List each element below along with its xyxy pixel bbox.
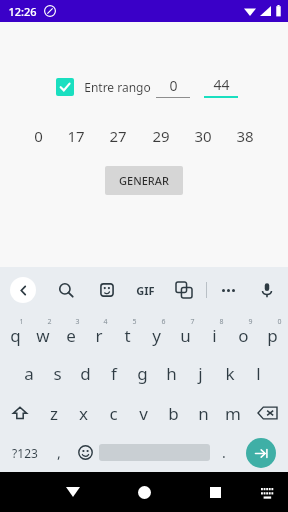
button[interactable]: Translate xyxy=(173,279,195,301)
button[interactable]: Backspace xyxy=(248,393,287,433)
staticText: x xyxy=(79,402,88,425)
button[interactable]: a xyxy=(15,353,43,393)
staticText: f xyxy=(111,362,117,385)
staticText: 1 xyxy=(19,317,24,327)
staticText: u xyxy=(180,324,191,347)
staticText: e xyxy=(66,324,76,347)
button[interactable]: 3 xyxy=(57,313,85,353)
staticText: 3 xyxy=(75,317,80,327)
staticText: a xyxy=(24,362,34,385)
button[interactable]: 0 xyxy=(156,76,190,98)
staticText: 12:26 xyxy=(8,4,37,19)
staticText: b xyxy=(168,402,179,425)
staticText: o xyxy=(238,324,249,347)
button[interactable]: v xyxy=(128,393,158,433)
staticText: 2 xyxy=(47,317,52,327)
button[interactable]: 2 xyxy=(29,313,57,353)
staticText: 9 xyxy=(248,317,253,327)
staticText: 8 xyxy=(219,317,224,327)
staticText: 44 xyxy=(213,75,230,94)
button[interactable]: 9 xyxy=(229,313,258,353)
staticText: GENERAR xyxy=(119,173,169,188)
staticText: 0 xyxy=(169,76,178,95)
button[interactable]: Emoji xyxy=(71,433,99,472)
staticText: 5 xyxy=(132,317,137,327)
button[interactable]: k xyxy=(215,353,244,393)
button[interactable]: 8 xyxy=(200,313,229,353)
button[interactable]: z xyxy=(39,393,68,433)
button[interactable]: h xyxy=(157,353,186,393)
button[interactable]: g xyxy=(128,353,157,393)
staticText: h xyxy=(166,362,177,385)
staticText: , xyxy=(57,443,61,462)
button[interactable]: f xyxy=(99,353,128,393)
button[interactable]: 1 xyxy=(1,313,29,353)
button[interactable]: 5 xyxy=(113,313,142,353)
button[interactable]: s xyxy=(43,353,71,393)
staticText: j xyxy=(198,362,203,385)
button[interactable]: n xyxy=(188,393,218,433)
button[interactable]: 44 xyxy=(204,75,238,98)
button[interactable]: Recents xyxy=(204,481,226,503)
button[interactable]: . xyxy=(210,433,238,472)
staticText: . xyxy=(222,443,226,462)
staticText: 0 xyxy=(34,126,43,146)
staticText: 0 xyxy=(277,317,282,327)
button[interactable]: 0 xyxy=(258,313,287,353)
button[interactable]: l xyxy=(244,353,273,393)
button[interactable]: Enter xyxy=(246,438,276,468)
button[interactable]: c xyxy=(98,393,128,433)
button[interactable]: 6 xyxy=(142,313,171,353)
staticText: c xyxy=(109,402,118,425)
staticText: Entre rango xyxy=(84,79,151,95)
staticText: n xyxy=(198,402,209,425)
staticText: w xyxy=(36,324,50,347)
button[interactable]: Shift xyxy=(1,393,39,433)
staticText: k xyxy=(225,362,235,385)
button[interactable]: m xyxy=(218,393,248,433)
staticText: 27 xyxy=(109,126,127,146)
button[interactable]: Search xyxy=(55,279,77,301)
button[interactable]: GENERAR xyxy=(105,166,183,195)
button[interactable]: j xyxy=(186,353,215,393)
button[interactable]: Back xyxy=(62,481,84,503)
staticText: l xyxy=(256,362,261,385)
staticText: z xyxy=(50,402,58,425)
staticText: ?123 xyxy=(12,445,38,461)
button[interactable]: 4 xyxy=(85,313,113,353)
button[interactable]: ?123 xyxy=(4,433,46,472)
staticText: i xyxy=(212,324,217,347)
staticText: q xyxy=(10,324,21,347)
button[interactable]: x xyxy=(68,393,98,433)
button[interactable]: GIF xyxy=(136,283,155,298)
staticText: p xyxy=(267,324,278,347)
staticText: 30 xyxy=(194,126,212,146)
staticText: 38 xyxy=(236,126,254,146)
staticText: d xyxy=(80,362,91,385)
staticText: m xyxy=(225,402,241,425)
staticText: 7 xyxy=(190,317,195,327)
staticText: 17 xyxy=(67,126,85,146)
button[interactable]: Voice input xyxy=(256,279,278,301)
staticText: y xyxy=(152,324,161,347)
staticText: v xyxy=(139,402,148,425)
staticText: 29 xyxy=(152,126,170,146)
button[interactable]: Home xyxy=(133,481,155,503)
button[interactable]: b xyxy=(158,393,188,433)
button[interactable]: 7 xyxy=(171,313,200,353)
staticText: 4 xyxy=(103,317,108,327)
staticText: s xyxy=(53,362,62,385)
button[interactable]: Back xyxy=(10,277,36,303)
staticText: 6 xyxy=(161,317,166,327)
button[interactable]: Stickers xyxy=(96,279,118,301)
button[interactable]: , xyxy=(46,433,71,472)
button[interactable]: More xyxy=(218,280,238,300)
button[interactable]: Entre rango checkbox xyxy=(56,78,74,96)
staticText: g xyxy=(137,362,148,385)
button[interactable]: d xyxy=(71,353,99,393)
staticText: r xyxy=(95,324,103,347)
staticText: t xyxy=(124,324,131,347)
